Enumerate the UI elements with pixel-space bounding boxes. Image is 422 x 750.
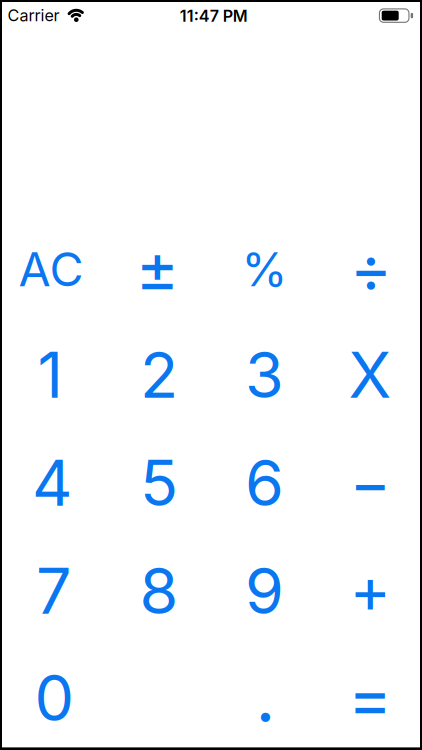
button[interactable]: 6 [212, 429, 317, 536]
staticText: 5 [140, 445, 178, 521]
staticText: ÷ [350, 230, 392, 307]
button[interactable]: = [317, 644, 422, 750]
staticText: Carrier [7, 6, 59, 25]
staticText: % [241, 241, 287, 298]
staticText: 9 [245, 553, 284, 629]
button[interactable]: % [212, 216, 317, 323]
staticText: = [348, 658, 392, 738]
button[interactable]: 3 [212, 321, 317, 428]
staticText: 7 [36, 553, 71, 629]
button[interactable]: 9 [212, 537, 317, 644]
button[interactable]: − [317, 429, 422, 536]
staticText: 11:47 PM [180, 6, 248, 26]
staticText: 3 [245, 337, 284, 413]
button[interactable]: ÷ [317, 216, 422, 323]
button[interactable]: 8 [106, 537, 212, 644]
staticText: 8 [139, 553, 178, 629]
staticText: + [349, 552, 390, 627]
staticText: 1 [37, 337, 62, 413]
staticText: 6 [245, 445, 284, 521]
button[interactable]: 5 [106, 429, 212, 536]
button[interactable]: AC [1, 216, 106, 323]
button[interactable]: . [212, 644, 317, 750]
button[interactable]: 7 [1, 537, 106, 644]
button[interactable]: 1 [1, 321, 106, 428]
button[interactable]: 0 [1, 644, 106, 750]
staticText: ± [135, 227, 179, 307]
staticText: . [255, 653, 275, 739]
staticText: AC [18, 241, 83, 298]
staticText: − [349, 445, 390, 520]
button[interactable]: 2 [106, 321, 212, 428]
button[interactable]: 4 [1, 429, 106, 536]
button[interactable]: X [317, 321, 422, 428]
staticText: 4 [32, 445, 72, 521]
button[interactable]: + [317, 537, 422, 644]
staticText: X [348, 337, 391, 413]
staticText: 0 [34, 660, 74, 736]
staticText: 2 [140, 337, 178, 413]
button[interactable]: ± [106, 216, 212, 323]
